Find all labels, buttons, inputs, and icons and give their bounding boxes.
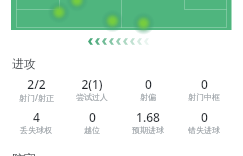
staticText: 预期进球 — [132, 125, 164, 135]
staticText: 进攻 — [12, 56, 36, 71]
button[interactable]: 防守 — [0, 148, 243, 156]
staticText: 4 — [33, 109, 40, 124]
button[interactable]: 0 — [64, 109, 120, 139]
button[interactable]: 2(1) — [64, 76, 120, 106]
staticText: 越位 — [84, 125, 100, 135]
button[interactable]: 2/2 — [8, 76, 64, 106]
button[interactable]: 4 — [8, 109, 64, 139]
staticText: 0 — [89, 109, 96, 124]
staticText: 射门中框 — [188, 92, 220, 102]
staticText: 1.68 — [136, 109, 160, 124]
staticText: 射偏 — [140, 92, 156, 102]
staticText: 丢失球权 — [20, 125, 52, 135]
button[interactable]: 1.68 — [120, 109, 176, 139]
staticText: 2/2 — [27, 76, 46, 91]
staticText: 2(1) — [81, 76, 103, 91]
staticText: 0 — [201, 76, 208, 91]
button[interactable]: 0 — [176, 76, 232, 106]
staticText: 尝试过人 — [76, 92, 108, 102]
staticText: 防守 — [12, 151, 36, 156]
button[interactable]: 进攻 — [0, 53, 243, 73]
button[interactable]: 0 — [176, 109, 232, 139]
staticText: 0 — [145, 76, 152, 91]
staticText: 射门/射正 — [19, 92, 54, 103]
button[interactable]: 0 — [120, 76, 176, 106]
staticText: 0 — [201, 109, 208, 124]
staticText: 错失进球 — [188, 125, 220, 135]
